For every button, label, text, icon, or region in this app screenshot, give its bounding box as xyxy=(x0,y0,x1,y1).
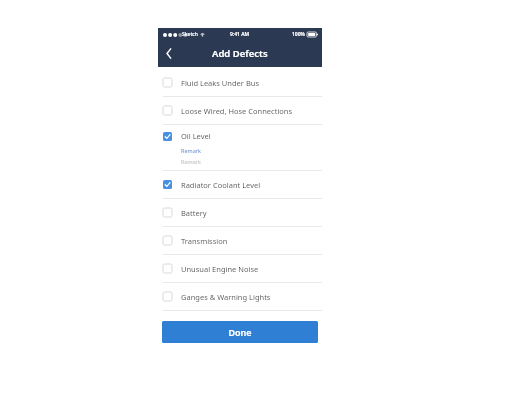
staticText: Done xyxy=(228,326,252,338)
button[interactable]: Unusual Engine Noise xyxy=(158,255,322,282)
button[interactable]: Fluid Leaks Under Bus xyxy=(158,69,322,96)
button[interactable]: Oil Level xyxy=(158,125,322,147)
staticText: Radiator Coolant Level xyxy=(181,180,261,190)
button[interactable]: Loose Wired, Hose Connections xyxy=(158,97,322,124)
staticText: Ganges & Warning Lights xyxy=(181,292,271,302)
button[interactable]: Battery xyxy=(158,199,322,226)
button[interactable]: Ganges & Warning Lights xyxy=(158,283,322,310)
staticText: Remark xyxy=(181,158,201,165)
staticText: Unusual Engine Noise xyxy=(181,264,259,274)
staticText: 9:41 AM xyxy=(230,31,250,38)
staticText: Fluid Leaks Under Bus xyxy=(181,78,259,88)
button[interactable]: Back xyxy=(158,40,180,67)
staticText: Transmission xyxy=(181,236,228,246)
button[interactable]: Remark xyxy=(181,147,322,170)
button[interactable]: Radiator Coolant Level xyxy=(158,171,322,198)
staticText: Battery xyxy=(181,208,207,218)
staticText: Sketch xyxy=(182,31,198,38)
button[interactable]: Done xyxy=(162,321,318,343)
button[interactable]: Transmission xyxy=(158,227,322,254)
staticText: Add Defects xyxy=(212,47,268,60)
staticText: Loose Wired, Hose Connections xyxy=(181,106,293,116)
staticText: Remark xyxy=(181,147,201,154)
staticText: Oil Level xyxy=(181,131,211,141)
staticText: 100% xyxy=(292,31,305,38)
